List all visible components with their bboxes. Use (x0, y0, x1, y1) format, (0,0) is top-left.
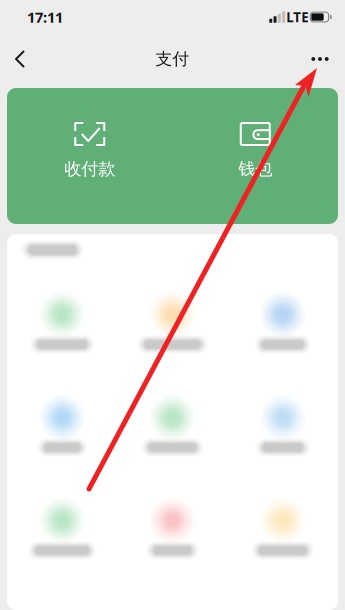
button[interactable] (117, 292, 228, 356)
button[interactable]: 钱包 (172, 88, 338, 224)
button[interactable] (7, 498, 117, 562)
staticText: LTE (286, 8, 308, 26)
button[interactable] (117, 498, 228, 562)
staticText: 支付 (155, 48, 189, 69)
button[interactable] (228, 292, 338, 356)
button[interactable] (7, 395, 117, 459)
staticText: 17:11 (27, 7, 63, 27)
button[interactable] (228, 395, 338, 459)
button[interactable]: 收付款 (7, 88, 172, 224)
button[interactable] (117, 395, 228, 459)
button[interactable]: More options (300, 34, 340, 78)
button[interactable]: Back (3, 34, 37, 78)
button[interactable] (7, 292, 117, 356)
button[interactable] (228, 498, 338, 562)
staticText: 钱包 (238, 158, 272, 180)
staticText: 收付款 (64, 158, 115, 180)
